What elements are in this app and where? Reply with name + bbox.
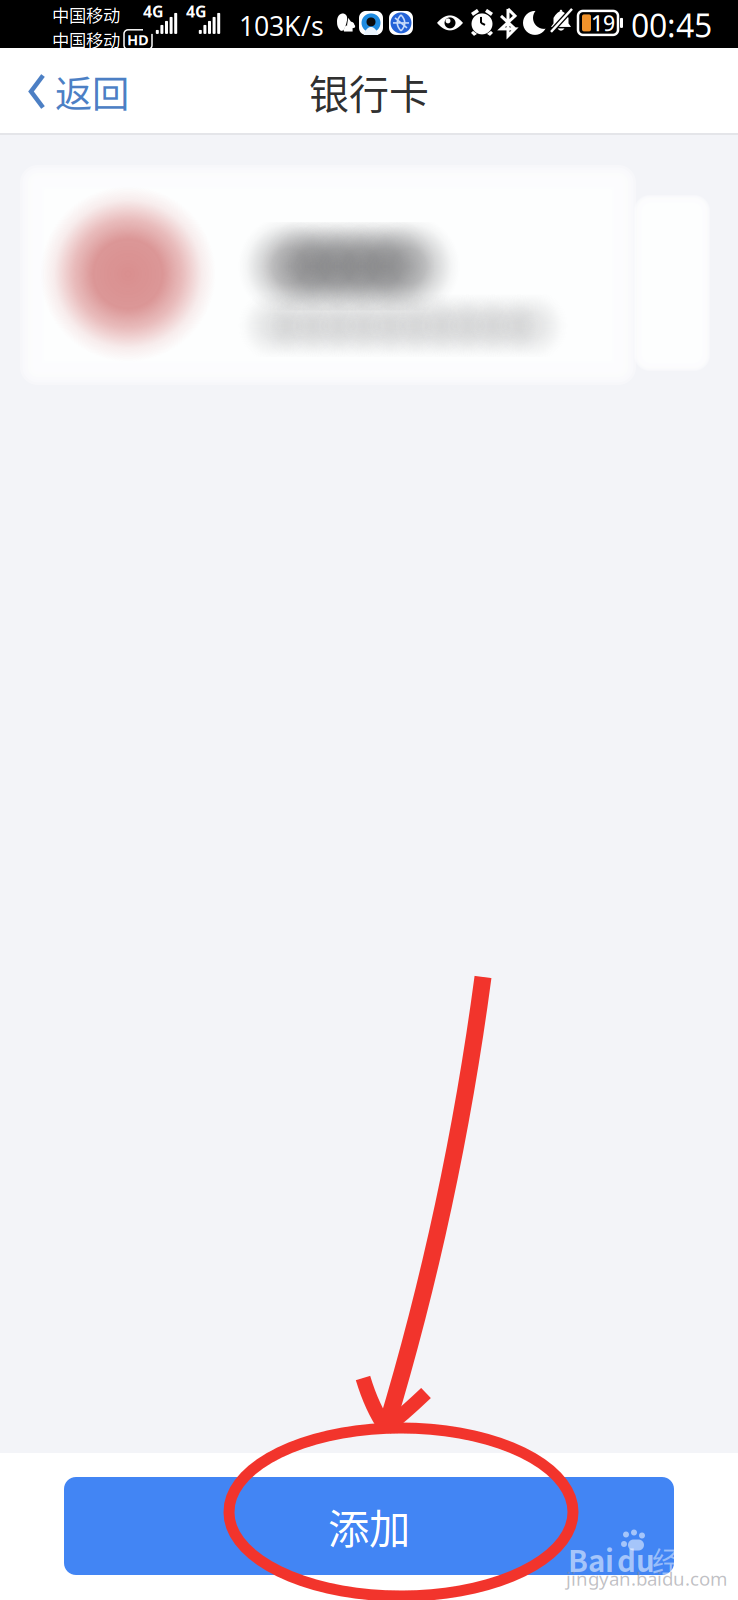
staticText: Bai: [568, 1538, 614, 1580]
staticText: 银行卡: [309, 62, 429, 120]
staticText: 103K/s: [239, 8, 324, 43]
staticText: jingyan.baidu.com: [566, 1566, 727, 1591]
staticText: 经验: [652, 1540, 708, 1580]
staticText: 00:45: [631, 4, 712, 46]
staticText: 中国移动: [52, 2, 120, 27]
staticText: 中国移动: [52, 27, 120, 52]
button[interactable]: 添加: [64, 1477, 674, 1575]
staticText: 添加: [328, 1496, 410, 1556]
button[interactable]: [20, 165, 636, 385]
staticText: 4G: [143, 1, 164, 22]
staticText: HD: [127, 30, 149, 49]
button[interactable]: 返回: [0, 46, 129, 137]
staticText: 4G: [186, 1, 207, 22]
staticText: 19: [591, 9, 615, 37]
staticText: du: [617, 1538, 655, 1580]
staticText: 返回: [55, 64, 129, 119]
